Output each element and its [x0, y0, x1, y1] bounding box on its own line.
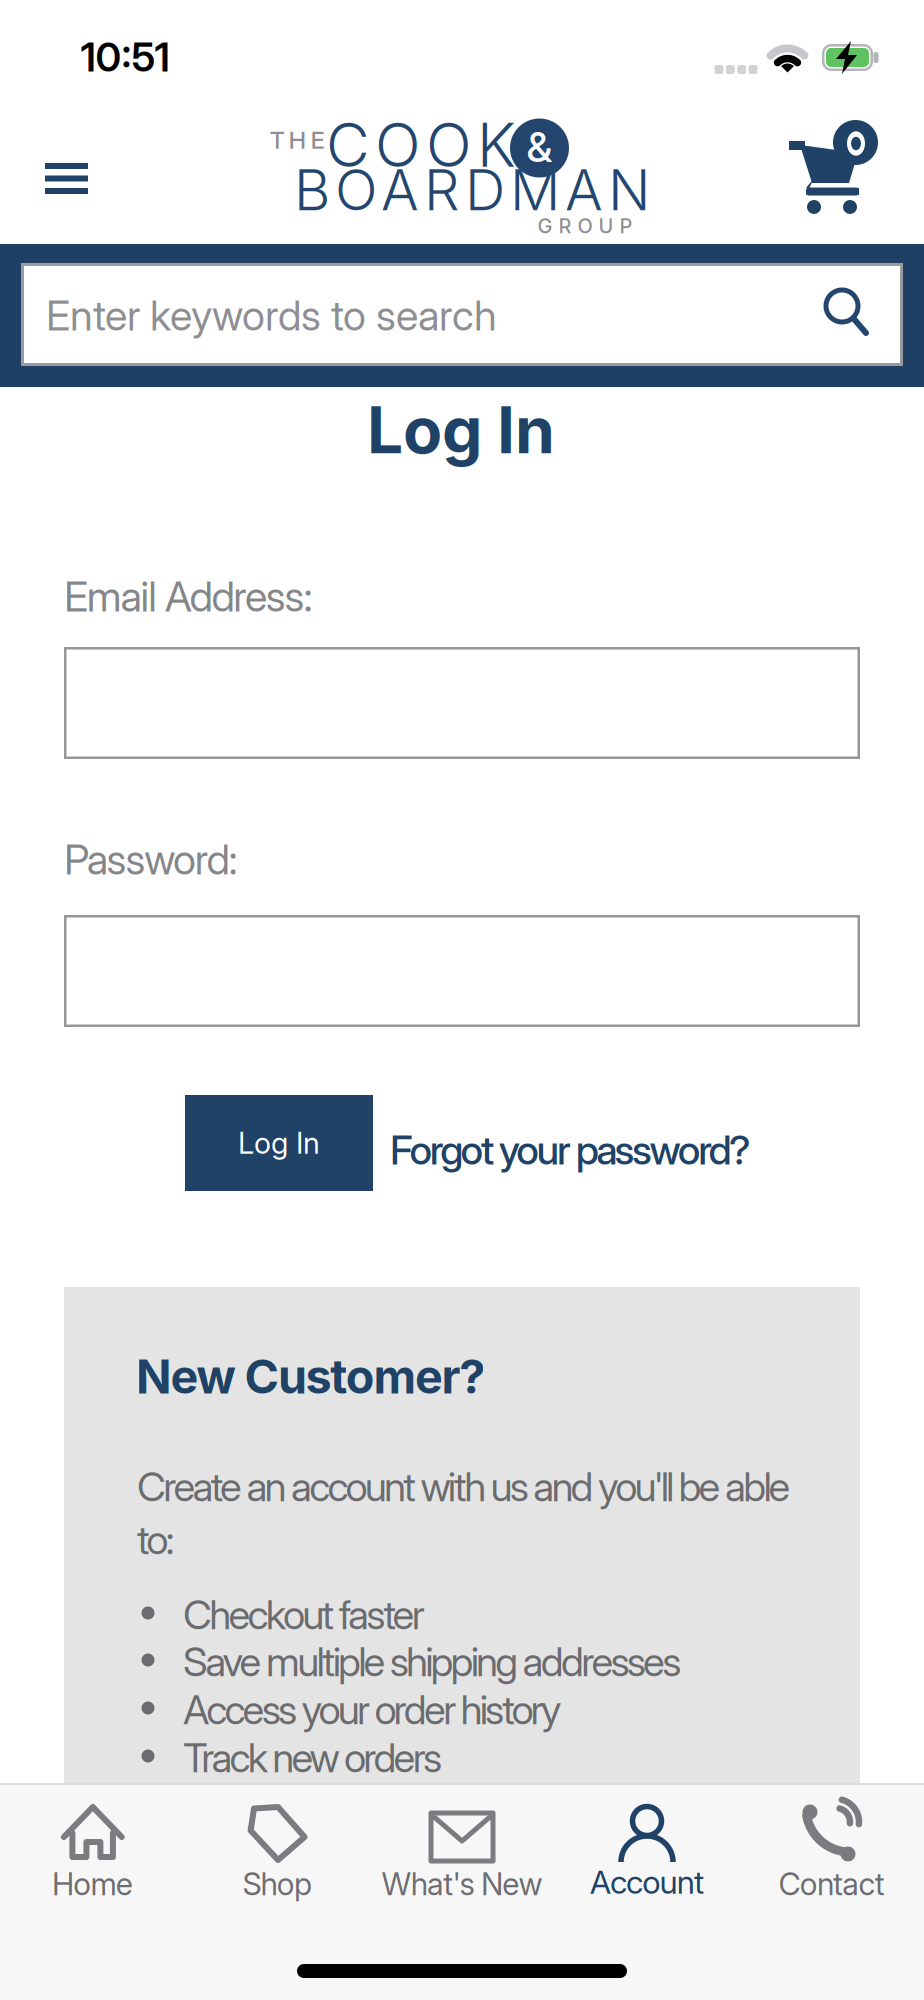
staticText: Access your order history [183, 1686, 562, 1733]
staticText: Log In [367, 392, 555, 468]
button[interactable]: Shop [192, 1783, 362, 1923]
staticText: Password: [64, 835, 237, 884]
button[interactable]: Account [562, 1783, 732, 1923]
staticText: to: [137, 1516, 174, 1563]
staticText: COOK [326, 110, 516, 180]
staticText: New Customer? [136, 1349, 485, 1404]
button[interactable]: Contact [747, 1783, 917, 1923]
staticText: What's New [382, 1866, 542, 1902]
staticText: GROUP [537, 214, 632, 238]
staticText: Account [590, 1863, 704, 1901]
staticText: Checkout faster [183, 1591, 425, 1638]
staticText: Enter keywords to search [46, 291, 497, 340]
staticText: 10:51 [80, 33, 169, 81]
staticText: Shop [242, 1866, 312, 1902]
staticText: Log In [238, 1126, 320, 1160]
staticText: Contact [778, 1866, 885, 1902]
button[interactable]: Enter keywords to search [21, 263, 903, 366]
button[interactable]: What's New [377, 1783, 547, 1923]
staticText: Save multiple shipping addresses [183, 1638, 681, 1685]
staticText: BOARDMAN [294, 157, 651, 223]
staticText: Forgot your password? [390, 1126, 750, 1174]
staticText: & [526, 123, 552, 171]
button[interactable]: Home [7, 1783, 177, 1923]
button[interactable]: Log In [185, 1095, 373, 1191]
button[interactable]: Menu [0, 135, 110, 225]
staticText: T H E [269, 126, 324, 154]
staticText: Create an account with us and you'll be … [137, 1463, 791, 1510]
staticText: Track new orders [183, 1734, 442, 1781]
button[interactable]: Cart [770, 110, 890, 230]
button[interactable]: Forgot your password? [390, 1126, 750, 1174]
staticText: Home [52, 1866, 133, 1902]
staticText: Email Address: [64, 572, 312, 621]
